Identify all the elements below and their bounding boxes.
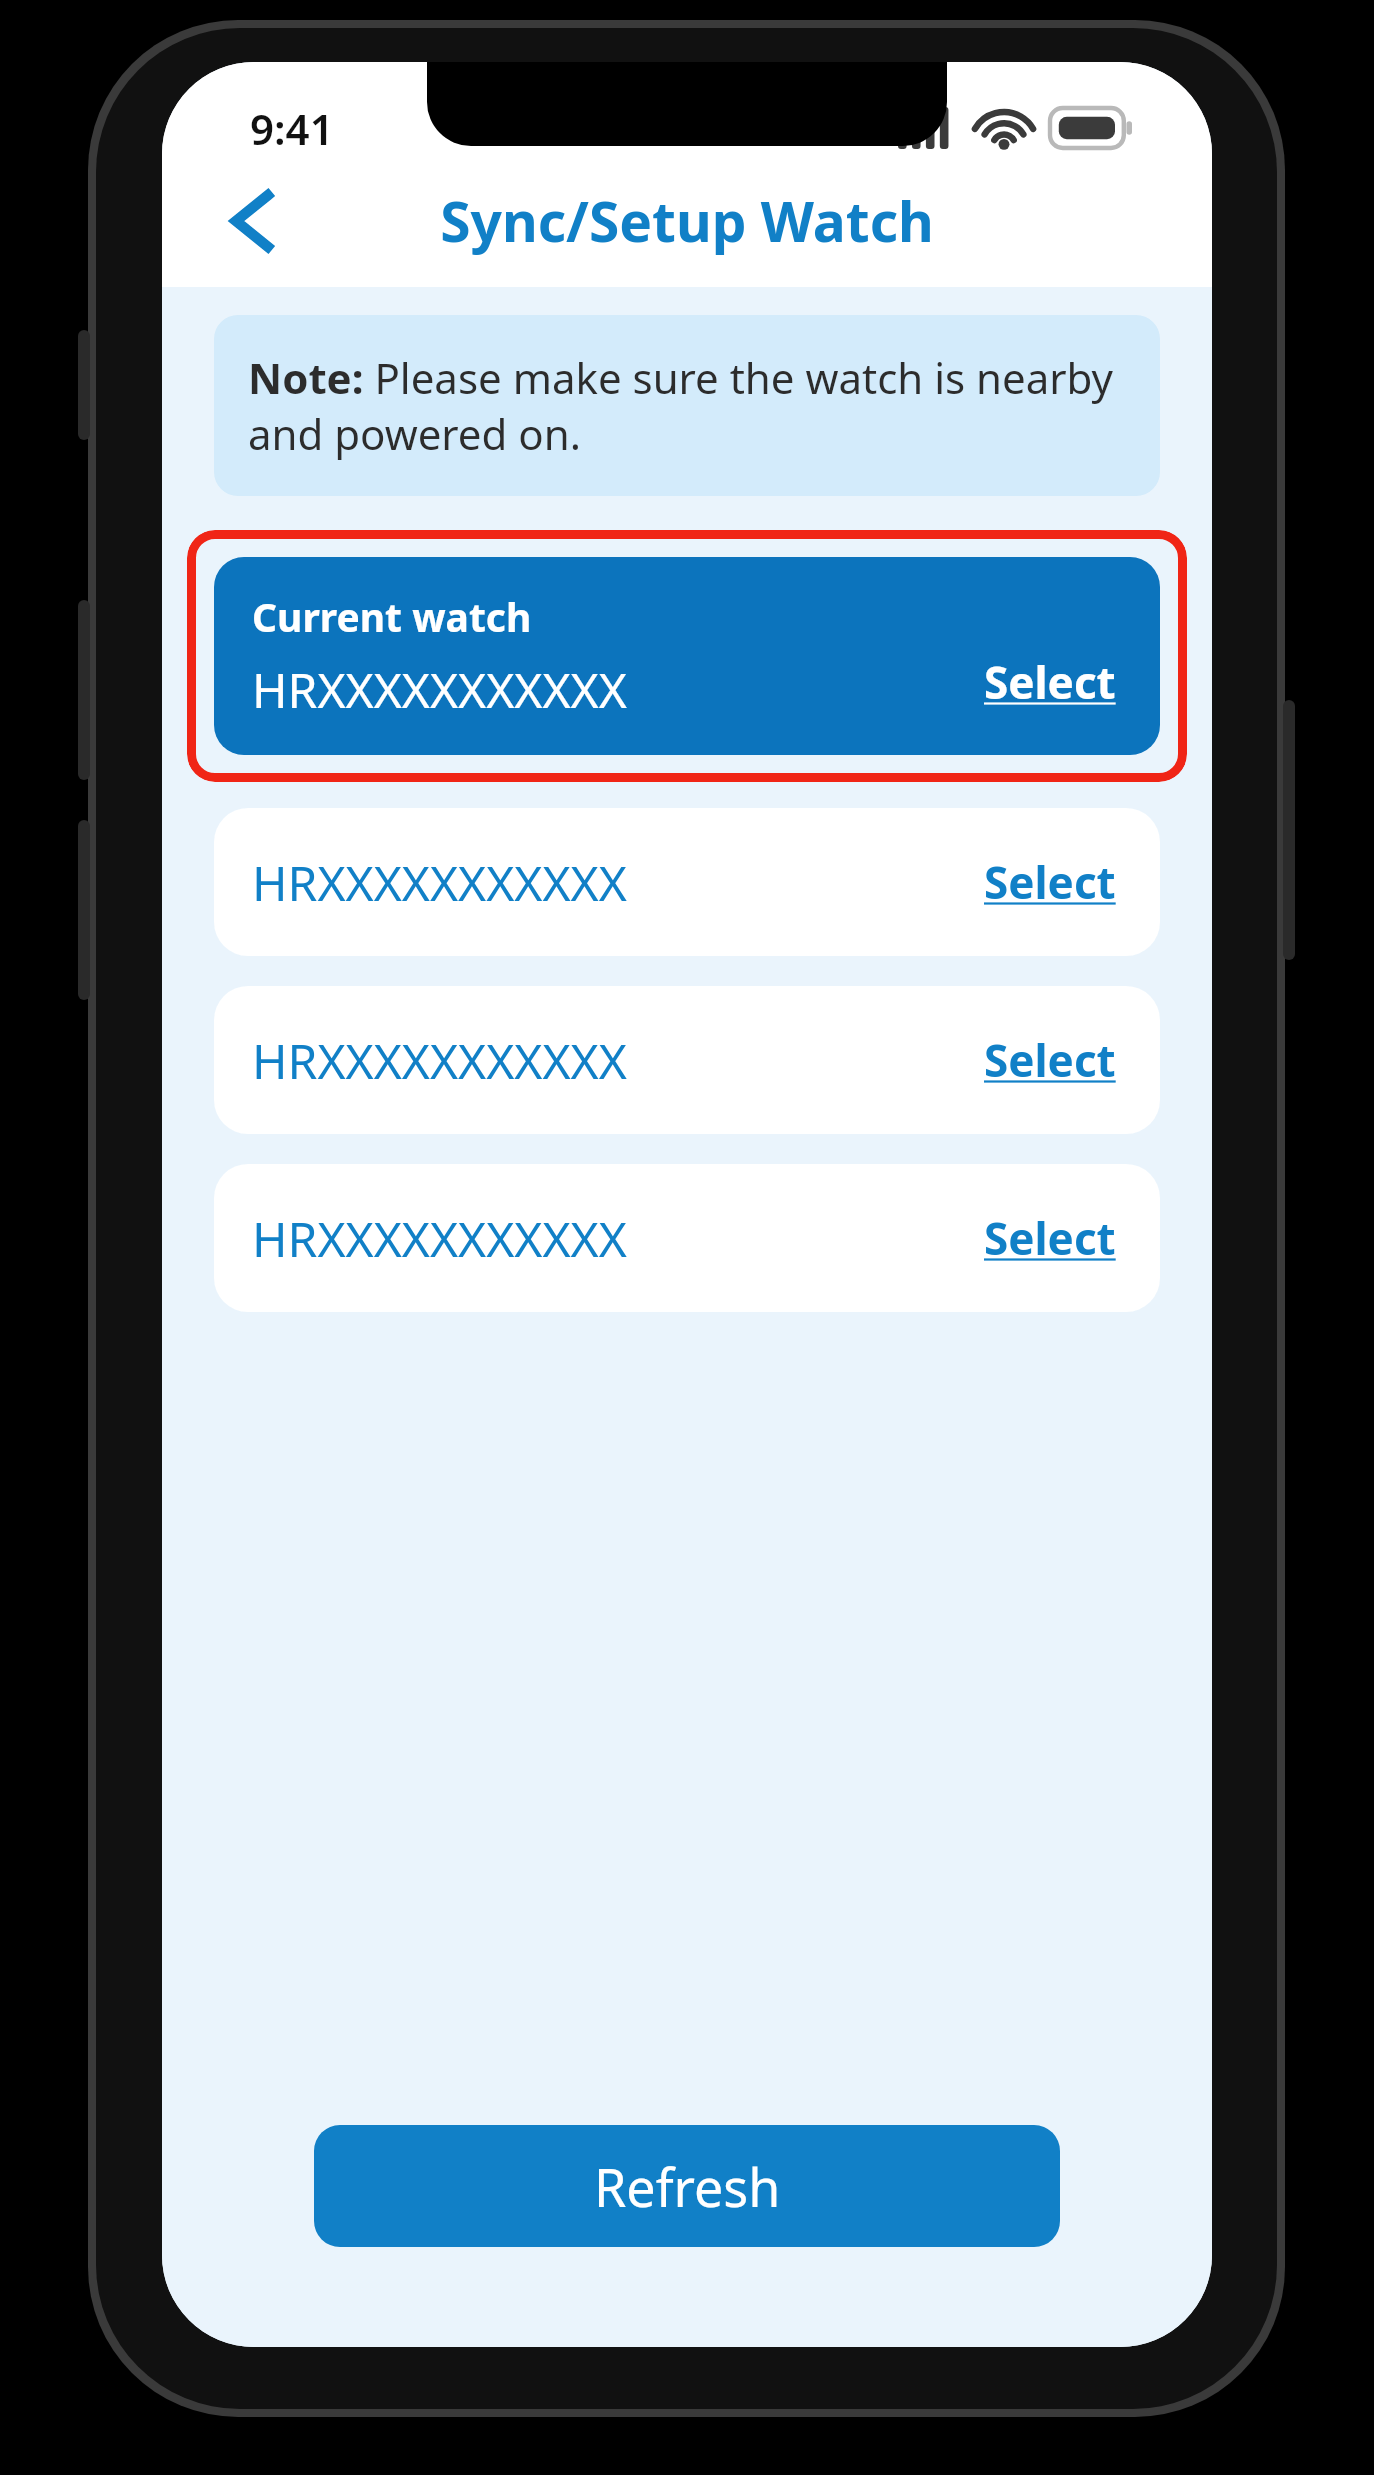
staticText: Select: [984, 652, 1116, 712]
staticText: HRXXXXXXXXXXX: [252, 1206, 627, 1271]
staticText: Select: [984, 1030, 1116, 1090]
button[interactable]: Select: [978, 846, 1122, 918]
staticText: Current watch: [252, 590, 532, 643]
button[interactable]: HRXXXXXXXXXXX: [214, 808, 1160, 956]
button[interactable]: Select: [978, 1202, 1122, 1274]
staticText: Note: Please make sure the watch is near…: [248, 349, 1126, 462]
staticText: HRXXXXXXXXXXX: [252, 850, 627, 915]
button[interactable]: HRXXXXXXXXXXX: [214, 1164, 1160, 1312]
staticText: HRXXXXXXXXXXX: [252, 1028, 627, 1093]
staticText: Sync/Setup Watch: [162, 183, 1212, 258]
button[interactable]: Back: [196, 166, 306, 276]
staticText: 9:41: [250, 100, 334, 157]
staticText: HRXXXXXXXXXXX: [252, 657, 627, 722]
staticText: Select: [984, 852, 1116, 912]
button[interactable]: Refresh: [314, 2125, 1060, 2247]
staticText: Refresh: [594, 2151, 781, 2222]
button[interactable]: HRXXXXXXXXXXX: [214, 986, 1160, 1134]
button[interactable]: Select: [978, 646, 1122, 718]
button[interactable]: Current watch: [214, 557, 1160, 755]
staticText: Select: [984, 1208, 1116, 1268]
button[interactable]: Select: [978, 1024, 1122, 1096]
